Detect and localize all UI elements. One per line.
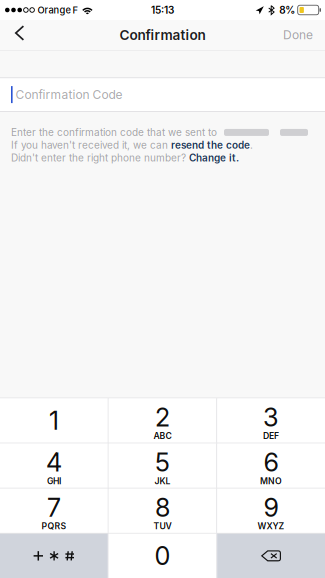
staticText: Confirmation <box>119 27 205 43</box>
staticText: 0 <box>154 540 170 571</box>
button[interactable]: Symbols <box>0 534 108 578</box>
staticText: 9 <box>264 492 279 523</box>
button[interactable]: 5 <box>109 443 216 488</box>
button[interactable]: Done <box>267 20 325 50</box>
button[interactable]: Delete <box>217 534 325 578</box>
staticText: 15:13 <box>151 4 174 16</box>
staticText: 1 <box>49 405 59 436</box>
staticText: 5 <box>155 447 170 478</box>
button[interactable]: 6 <box>217 443 325 488</box>
button[interactable]: 9 <box>217 489 325 533</box>
button[interactable]: 0 <box>109 534 216 578</box>
staticText: Orange F <box>37 4 78 16</box>
staticText: 7 <box>47 492 61 523</box>
button[interactable]: 7 <box>0 489 108 533</box>
button[interactable]: 8 <box>109 489 216 533</box>
staticText: 6 <box>264 447 279 478</box>
staticText: 2 <box>155 402 170 433</box>
button[interactable]: 1 <box>0 398 108 443</box>
button[interactable]: 3 <box>217 398 325 443</box>
staticText: 3 <box>263 402 279 433</box>
staticText: 4 <box>46 447 62 478</box>
button[interactable]: 4 <box>0 443 108 488</box>
staticText: ABC <box>153 431 171 441</box>
staticText: DEF <box>263 431 279 441</box>
button[interactable]: Back <box>0 20 49 50</box>
staticText: Done <box>283 28 313 42</box>
staticText: TUV <box>153 521 171 531</box>
staticText: GHI <box>47 476 61 486</box>
staticText: MNO <box>260 476 282 486</box>
staticText: Enter the confirmation code that we sent… <box>11 126 217 138</box>
staticText: Change it. <box>189 152 239 164</box>
staticText: . <box>250 139 253 151</box>
staticText: PQRS <box>41 521 66 531</box>
staticText: 8 <box>155 492 170 523</box>
staticText: resend the code <box>171 139 250 151</box>
button[interactable]: 2 <box>109 398 216 443</box>
staticText: WXYZ <box>258 521 285 531</box>
staticText: If you haven't received it, we can <box>11 139 171 151</box>
staticText: Confirmation Code <box>16 87 123 102</box>
staticText: JKL <box>154 476 170 486</box>
staticText: 8% <box>279 4 295 16</box>
staticText: Didn't enter the right phone number? <box>11 152 189 164</box>
